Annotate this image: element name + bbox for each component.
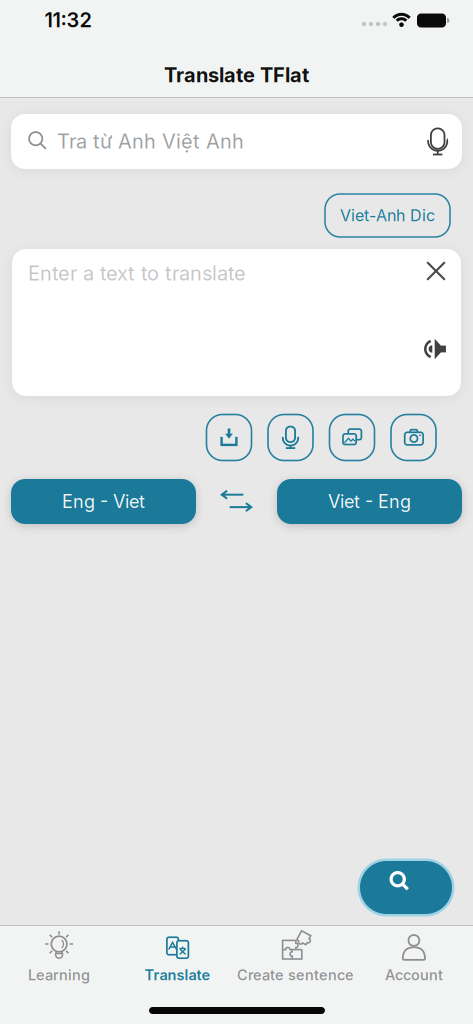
button[interactable]: Take photo: [391, 414, 436, 460]
staticText: Eng - Viet: [62, 491, 145, 512]
button[interactable]: Speak: [422, 335, 450, 363]
button[interactable]: Swap languages: [220, 487, 252, 515]
button[interactable]: Account: [355, 925, 473, 989]
staticText: Viet-Anh Dic: [340, 206, 435, 225]
button[interactable]: Save: [206, 414, 251, 460]
staticText: Account: [385, 966, 443, 984]
button[interactable]: Voice search: [426, 127, 450, 157]
button[interactable]: Viet-Anh Dic: [325, 194, 450, 237]
staticText: 11:32: [44, 8, 91, 32]
button[interactable]: Tra từ Anh Việt Anh: [11, 114, 462, 169]
staticText: Translate: [144, 966, 210, 984]
staticText: Tra từ Anh Việt Anh: [57, 129, 244, 153]
button[interactable]: Voice input: [268, 414, 313, 460]
button[interactable]: Search: [357, 858, 454, 916]
button[interactable]: Choose photo: [329, 414, 374, 460]
button[interactable]: Clear text: [421, 256, 451, 286]
button[interactable]: Learning: [0, 925, 118, 989]
staticText: Viet - Eng: [328, 491, 411, 512]
staticText: Learning: [28, 966, 90, 984]
button[interactable]: Viet - Eng: [277, 479, 462, 524]
button[interactable]: Translate: [118, 925, 236, 989]
staticText: Create sentence: [237, 966, 354, 984]
button[interactable]: Create sentence: [237, 925, 355, 989]
staticText: Enter a text to translate: [28, 261, 246, 285]
staticText: Translate TFlat: [164, 63, 309, 87]
button[interactable]: Eng - Viet: [11, 479, 196, 524]
